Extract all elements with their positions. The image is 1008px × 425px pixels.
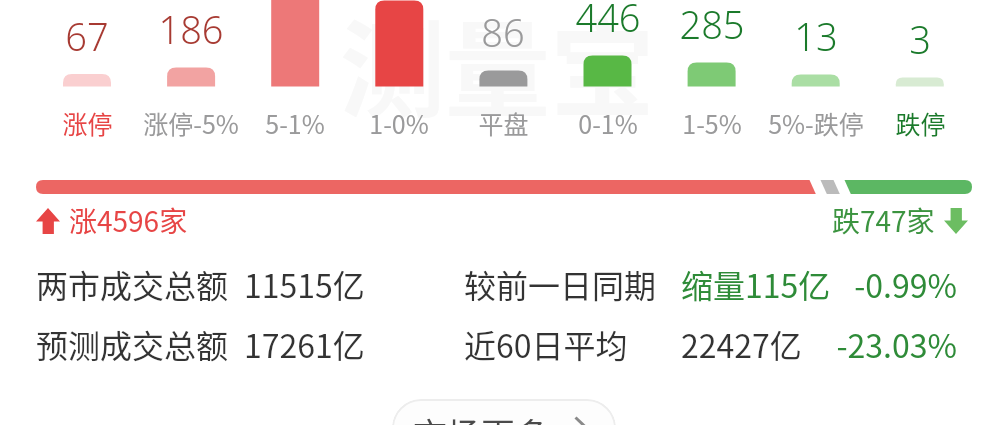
staticText: 测量宝 <box>340 0 656 138</box>
staticText: 两市成交总额 <box>36 261 229 303</box>
staticText: -0.99% <box>796 261 957 303</box>
other: Advancing stocks <box>36 208 60 234</box>
button[interactable]: 跌747家 <box>832 200 968 241</box>
button[interactable]: 5%-跌停 <box>764 0 868 145</box>
staticText: 67 <box>65 10 109 62</box>
staticText: 跌停 <box>895 105 946 141</box>
staticText: 13 <box>794 10 838 62</box>
staticText: 11515亿 <box>244 261 365 303</box>
staticText: 1-5% <box>682 105 742 141</box>
staticText: 涨4596家 <box>69 200 188 241</box>
staticText: 3 <box>909 13 931 65</box>
staticText: 涨停 <box>62 105 113 141</box>
button[interactable]: 涨停-5% <box>139 0 243 145</box>
staticText: 0-1% <box>578 105 638 141</box>
staticText: 缩量115亿 <box>681 261 796 303</box>
button[interactable]: 跌停 <box>868 0 972 145</box>
button[interactable]: 预测成交总额 <box>36 321 416 363</box>
button[interactable]: 平盘 <box>451 0 555 145</box>
button[interactable]: 1-5% <box>660 0 764 145</box>
staticText: 285 <box>679 0 745 50</box>
staticText: 跌747家 <box>832 200 935 241</box>
button[interactable]: 5-1% <box>243 0 347 145</box>
staticText: 17261亿 <box>244 321 365 363</box>
button[interactable]: 近60日平均 <box>464 321 957 363</box>
staticText: 5%-跌停 <box>768 105 864 141</box>
button[interactable]: Advancing stocks <box>36 200 188 241</box>
staticText: -23.03% <box>796 321 957 363</box>
button[interactable]: 1-0% <box>347 0 451 145</box>
button[interactable]: 较前一日同期 <box>464 261 957 303</box>
staticText: 186 <box>158 3 224 55</box>
staticText: 446 <box>575 0 641 43</box>
button[interactable]: 市场更多 <box>392 399 616 425</box>
staticText: 较前一日同期 <box>464 261 657 303</box>
staticText: 预测成交总额 <box>36 321 229 363</box>
staticText: 86 <box>481 6 525 58</box>
staticText: 22427亿 <box>681 321 796 363</box>
staticText: 平盘 <box>478 105 529 141</box>
staticText: 5-1% <box>265 105 325 141</box>
button[interactable]: 涨停 <box>35 0 139 145</box>
staticText: 近60日平均 <box>464 321 628 363</box>
staticText: 市场更多 <box>413 409 549 425</box>
staticText: 涨停-5% <box>143 105 239 141</box>
button[interactable]: 0-1% <box>556 0 660 145</box>
button[interactable]: 两市成交总额 <box>36 261 416 303</box>
other: Declining stocks <box>944 208 968 234</box>
staticText: 1-0% <box>369 105 429 141</box>
